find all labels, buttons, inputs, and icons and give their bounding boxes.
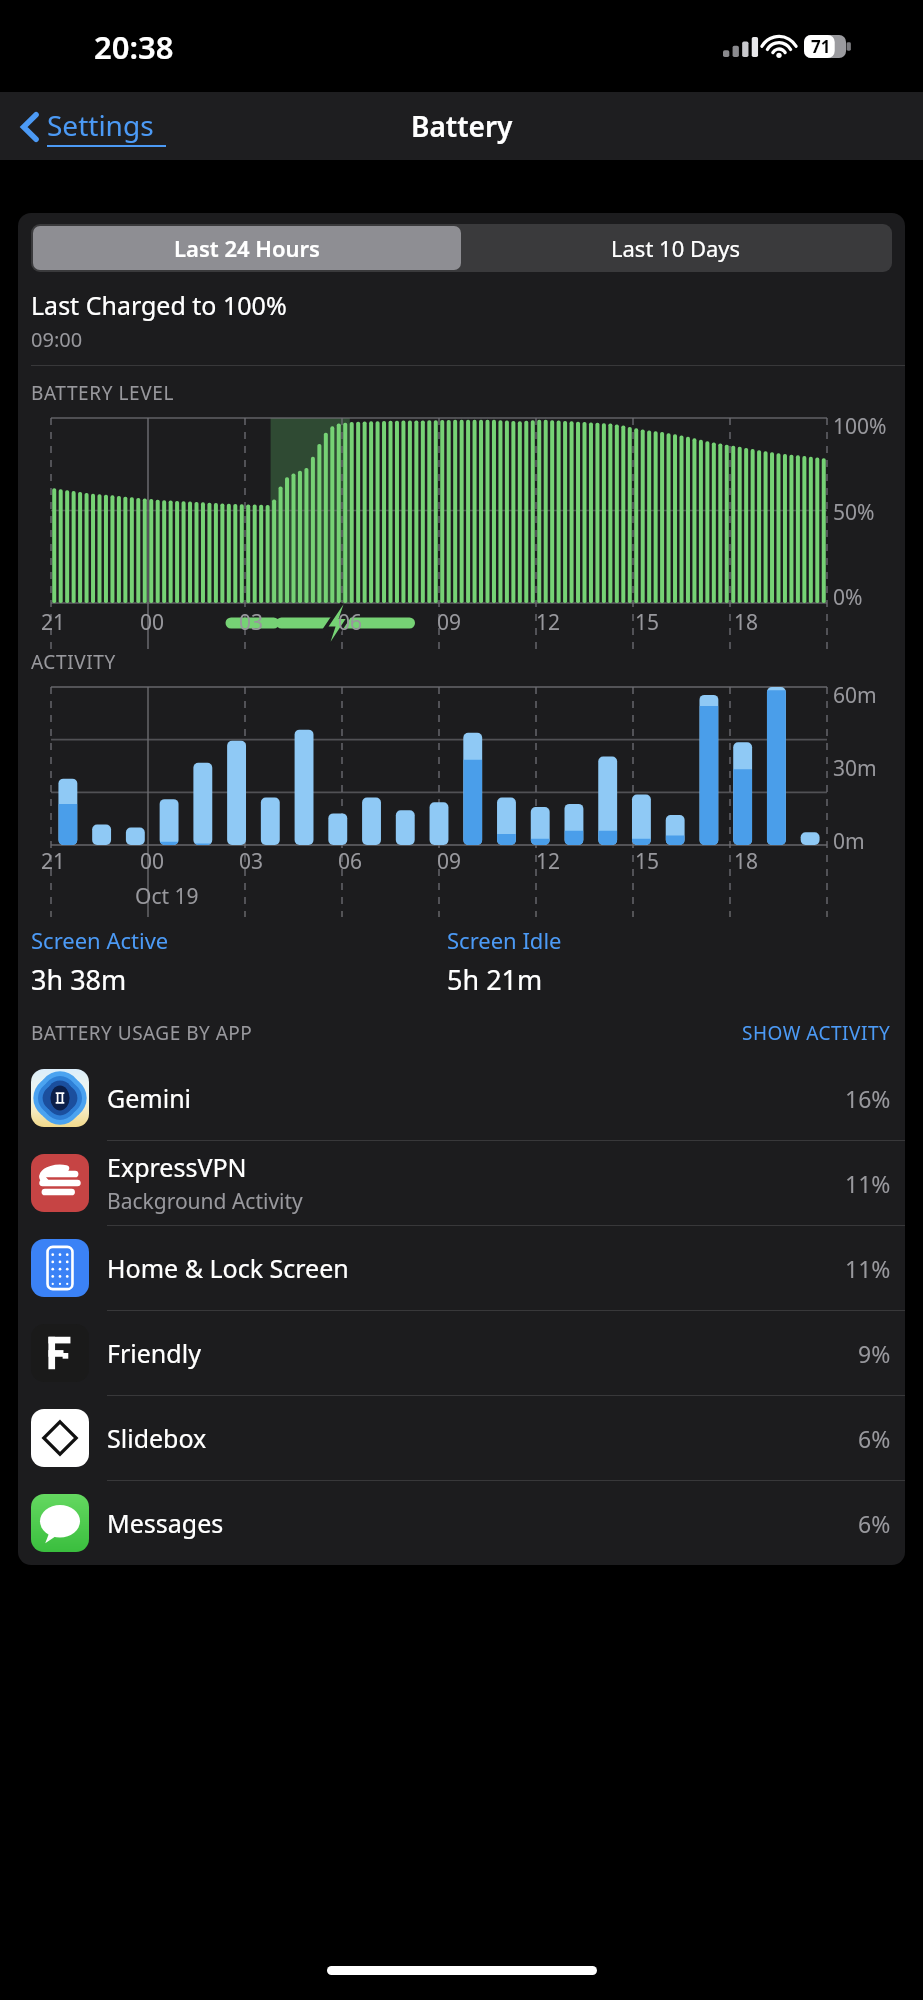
staticText: 100% xyxy=(833,412,887,441)
staticText: 5h 21m xyxy=(447,961,543,998)
staticText: 09:00 xyxy=(31,326,83,353)
button[interactable]: Last 24 Hours xyxy=(33,226,461,270)
staticText: ExpressVPN xyxy=(107,1150,247,1184)
staticText: 06 xyxy=(338,608,363,637)
staticText: BATTERY LEVEL xyxy=(31,380,174,406)
staticText: 20:38 xyxy=(94,26,174,68)
button[interactable]: Home & Lock Screen xyxy=(18,1226,905,1311)
staticText: 11% xyxy=(845,1253,891,1284)
staticText: 6% xyxy=(858,1423,891,1454)
staticText: 60m xyxy=(833,681,877,710)
button[interactable]: Settings xyxy=(18,100,170,153)
button[interactable]: ExpressVPN xyxy=(18,1141,905,1226)
staticText: 00 xyxy=(140,847,165,876)
staticText: Last 24 Hours xyxy=(174,233,320,263)
staticText: Screen Idle xyxy=(447,925,562,955)
staticText: 50% xyxy=(833,498,875,527)
button[interactable]: Friendly xyxy=(18,1311,905,1396)
staticText: 21 xyxy=(41,608,66,637)
staticText: 15 xyxy=(635,847,660,876)
button[interactable]: Slidebox xyxy=(18,1396,905,1481)
staticText: 0m xyxy=(833,827,865,856)
staticText: BATTERY USAGE BY APP xyxy=(31,1020,253,1046)
staticText: 71 xyxy=(811,35,831,58)
staticText: 3h 38m xyxy=(31,961,127,998)
staticText: 11% xyxy=(845,1168,891,1199)
staticText: 16% xyxy=(845,1083,891,1114)
staticText: 6% xyxy=(858,1508,891,1539)
staticText: Battery xyxy=(411,107,513,145)
staticText: 15 xyxy=(635,608,660,637)
staticText: 03 xyxy=(239,608,264,637)
staticText: Gemini xyxy=(107,1081,192,1115)
staticText: 12 xyxy=(536,608,561,637)
button[interactable]: Last 10 Days xyxy=(461,226,890,270)
staticText: 30m xyxy=(833,754,877,783)
staticText: 0% xyxy=(833,583,863,612)
staticText: Home & Lock Screen xyxy=(107,1251,349,1285)
staticText: Settings xyxy=(47,106,154,144)
staticText: Background Activity xyxy=(107,1187,303,1216)
staticText: 06 xyxy=(338,847,363,876)
staticText: 9% xyxy=(858,1338,891,1369)
staticText: 03 xyxy=(239,847,264,876)
button[interactable]: Gemini xyxy=(18,1056,905,1141)
staticText: 09 xyxy=(437,608,462,637)
staticText: 12 xyxy=(536,847,561,876)
staticText: 21 xyxy=(41,847,66,876)
staticText: Last 10 Days xyxy=(611,233,741,263)
staticText: 18 xyxy=(734,847,759,876)
staticText: Oct 19 xyxy=(135,882,199,911)
staticText: Last Charged to 100% xyxy=(31,288,287,322)
button[interactable]: Messages xyxy=(18,1481,905,1565)
staticText: ACTIVITY xyxy=(31,649,116,675)
button[interactable]: SHOW ACTIVITY xyxy=(742,1020,891,1046)
staticText: 00 xyxy=(140,608,165,637)
staticText: Friendly xyxy=(107,1336,201,1370)
staticText: Screen Active xyxy=(31,925,169,955)
staticText: Slidebox xyxy=(107,1421,207,1455)
staticText: 09 xyxy=(437,847,462,876)
staticText: 18 xyxy=(734,608,759,637)
staticText: SHOW ACTIVITY xyxy=(742,1020,891,1046)
staticText: Messages xyxy=(107,1506,224,1540)
